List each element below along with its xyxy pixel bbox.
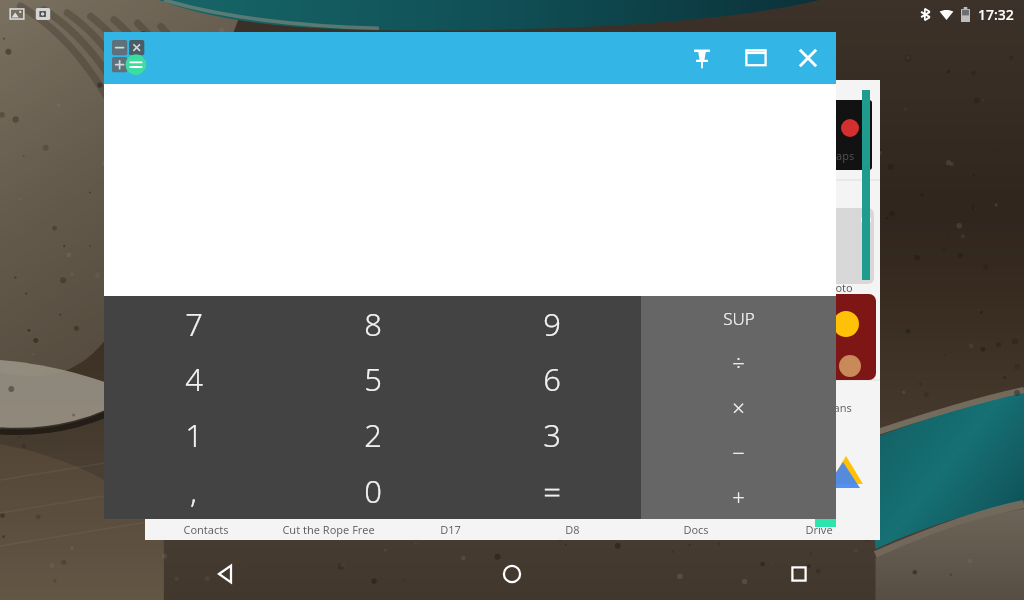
staticText: Drive xyxy=(805,522,833,537)
button[interactable]: 7 xyxy=(104,296,283,351)
button[interactable]: D17 xyxy=(389,519,511,540)
staticText: Docs xyxy=(683,522,709,537)
button[interactable]: 1 xyxy=(104,407,283,463)
staticText: Maps xyxy=(826,148,855,163)
button[interactable]: 4 xyxy=(104,351,283,407)
staticText: 8 xyxy=(364,303,382,345)
staticText: Plans xyxy=(824,400,852,415)
button[interactable]: 9 xyxy=(462,296,641,351)
staticText: + xyxy=(732,482,745,512)
button[interactable]: + xyxy=(641,474,836,519)
staticText: 4 xyxy=(185,358,203,400)
staticText: SUP xyxy=(723,307,755,330)
staticText: 0 xyxy=(364,470,382,512)
button[interactable]: Docs xyxy=(634,519,757,540)
button[interactable]: Recent apps xyxy=(773,548,825,600)
staticText: = xyxy=(543,470,561,512)
staticText: 2 xyxy=(364,414,382,456)
button[interactable]: Maximize window xyxy=(736,38,776,78)
button[interactable]: 3 xyxy=(462,407,641,463)
staticText: Contacts xyxy=(183,522,229,537)
staticText: 5 xyxy=(364,358,382,400)
button[interactable]: 0 xyxy=(283,463,462,519)
button[interactable]: Back xyxy=(199,548,251,600)
button[interactable]: − xyxy=(641,429,836,474)
staticText: ÷ xyxy=(732,347,745,377)
button[interactable]: , xyxy=(104,463,283,519)
button[interactable]: = xyxy=(462,463,641,519)
staticText: Photo xyxy=(822,280,853,295)
button[interactable]: Contacts xyxy=(145,519,267,540)
staticText: 6 xyxy=(543,358,561,400)
button[interactable]: Calculator app icon xyxy=(112,40,150,78)
staticText: D8 xyxy=(565,522,580,537)
button[interactable]: Pin window xyxy=(682,38,722,78)
staticText: 3 xyxy=(543,414,561,456)
button[interactable]: ÷ xyxy=(641,340,836,384)
button[interactable]: Home xyxy=(486,548,538,600)
button[interactable]: 6 xyxy=(462,351,641,407)
staticText: , xyxy=(190,470,197,512)
button[interactable]: Close window xyxy=(788,38,828,78)
staticText: − xyxy=(732,437,745,467)
button[interactable]: Drive xyxy=(757,519,880,540)
staticText: 1 xyxy=(185,414,203,456)
button[interactable]: Cut the Rope Free xyxy=(267,519,389,540)
button[interactable]: 5 xyxy=(283,351,462,407)
button[interactable]: SUP xyxy=(641,296,836,340)
button[interactable]: D8 xyxy=(511,519,634,540)
other: Screenshot captured xyxy=(8,5,26,23)
staticText: 17:32 xyxy=(978,5,1014,24)
button[interactable]: 8 xyxy=(283,296,462,351)
button[interactable]: × xyxy=(641,384,836,429)
staticText: × xyxy=(732,392,745,422)
button[interactable]: 2 xyxy=(283,407,462,463)
staticText: 9 xyxy=(543,303,561,345)
staticText: Cut the Rope Free xyxy=(282,522,375,537)
staticText: D17 xyxy=(440,522,461,537)
other: Screen capture xyxy=(34,5,52,23)
staticText: 7 xyxy=(185,303,203,345)
